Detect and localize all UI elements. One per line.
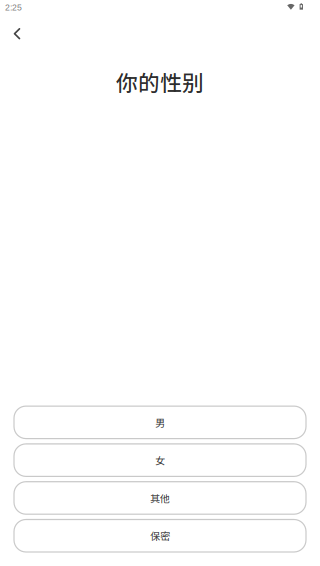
button[interactable]: 男 [14, 406, 306, 439]
staticText: 2:25 [5, 3, 22, 12]
button[interactable]: 保密 [14, 519, 306, 552]
staticText: 你的性别 [116, 66, 204, 97]
button[interactable]: Back [2, 13, 32, 49]
staticText: 其他 [150, 491, 170, 505]
staticText: 女 [155, 453, 165, 467]
staticText: 男 [155, 415, 165, 430]
button[interactable]: 女 [14, 444, 306, 476]
staticText: 保密 [150, 528, 170, 543]
button[interactable]: 其他 [14, 482, 306, 514]
